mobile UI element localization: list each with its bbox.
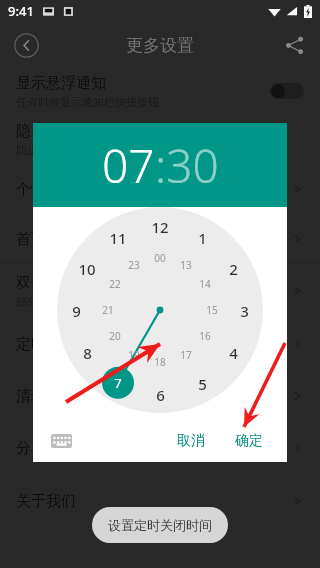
- staticText: 19: [128, 348, 140, 362]
- staticText: 隐藏状态栏: [16, 122, 91, 141]
- staticText: 3: [240, 301, 249, 319]
- button[interactable]: Switch to keyboard input: [47, 427, 75, 455]
- staticText: 取消: [177, 432, 205, 450]
- button[interactable]: 显示悬浮通知: [0, 68, 320, 114]
- staticText: 清理缓存: [16, 387, 76, 406]
- staticText: 防止误触操作: [16, 143, 82, 157]
- staticText: 15: [206, 303, 218, 317]
- staticText: 6: [156, 385, 165, 403]
- staticText: 9:41: [8, 2, 34, 20]
- button[interactable]: 07: [102, 134, 155, 197]
- staticText: 20: [109, 329, 121, 343]
- staticText: 14: [199, 277, 211, 291]
- staticText: 部分机型可用: [16, 295, 82, 309]
- staticText: 11: [109, 228, 127, 246]
- button[interactable]: 关于我们: [0, 474, 320, 528]
- staticText: 07: [102, 134, 155, 197]
- button[interactable]: Share: [278, 29, 310, 61]
- staticText: 5: [198, 374, 207, 392]
- staticText: 1: [198, 228, 207, 246]
- button[interactable]: Back: [10, 29, 42, 61]
- staticText: 显示悬浮通知: [16, 74, 106, 93]
- staticText: 8: [83, 343, 92, 361]
- button[interactable]: 隐藏状态栏: [0, 115, 320, 163]
- staticText: 任何时候显示通知栏快捷按钮: [16, 95, 159, 109]
- staticText: 12: [151, 217, 169, 235]
- staticText: 17: [180, 348, 192, 362]
- staticText: 关于我们: [16, 492, 76, 511]
- button[interactable]: 确定: [225, 426, 273, 456]
- button[interactable]: :30: [155, 134, 219, 197]
- staticText: 2: [229, 259, 238, 277]
- staticText: 个性化设置: [16, 180, 91, 199]
- staticText: 16: [199, 329, 211, 343]
- staticText: 10: [78, 259, 96, 277]
- button[interactable]: 12: [33, 207, 287, 420]
- button[interactable]: 首页设置: [0, 215, 320, 263]
- staticText: 双击返回: [16, 274, 76, 293]
- button[interactable]: 个性化设置: [0, 164, 320, 214]
- staticText: 9: [72, 301, 81, 319]
- staticText: 定时关闭: [16, 335, 76, 354]
- staticText: 18: [154, 355, 166, 369]
- staticText: 4: [229, 343, 238, 361]
- staticText: 设置定时关闭时间: [108, 517, 212, 533]
- button[interactable]: 分享推荐: [0, 423, 320, 473]
- button[interactable]: 清理缓存: [0, 370, 320, 422]
- button[interactable]: 定时关闭: [0, 319, 320, 369]
- staticText: 22: [109, 277, 121, 291]
- staticText: 首页设置: [16, 230, 76, 249]
- staticText: 21: [102, 303, 114, 317]
- staticText: 00: [154, 251, 166, 265]
- staticText: 确定: [235, 432, 263, 450]
- button[interactable]: [270, 83, 304, 99]
- staticText: 更多设置: [126, 35, 194, 56]
- button[interactable]: 双击返回: [0, 264, 320, 318]
- staticText: :30: [155, 134, 219, 197]
- staticText: 13: [180, 258, 192, 272]
- button[interactable]: 取消: [167, 426, 215, 456]
- staticText: 分享推荐: [16, 439, 76, 458]
- staticText: 7: [114, 374, 122, 392]
- staticText: 23: [128, 258, 140, 272]
